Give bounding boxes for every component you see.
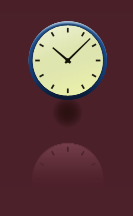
button[interactable]: Clock, 10:08	[0, 0, 133, 216]
